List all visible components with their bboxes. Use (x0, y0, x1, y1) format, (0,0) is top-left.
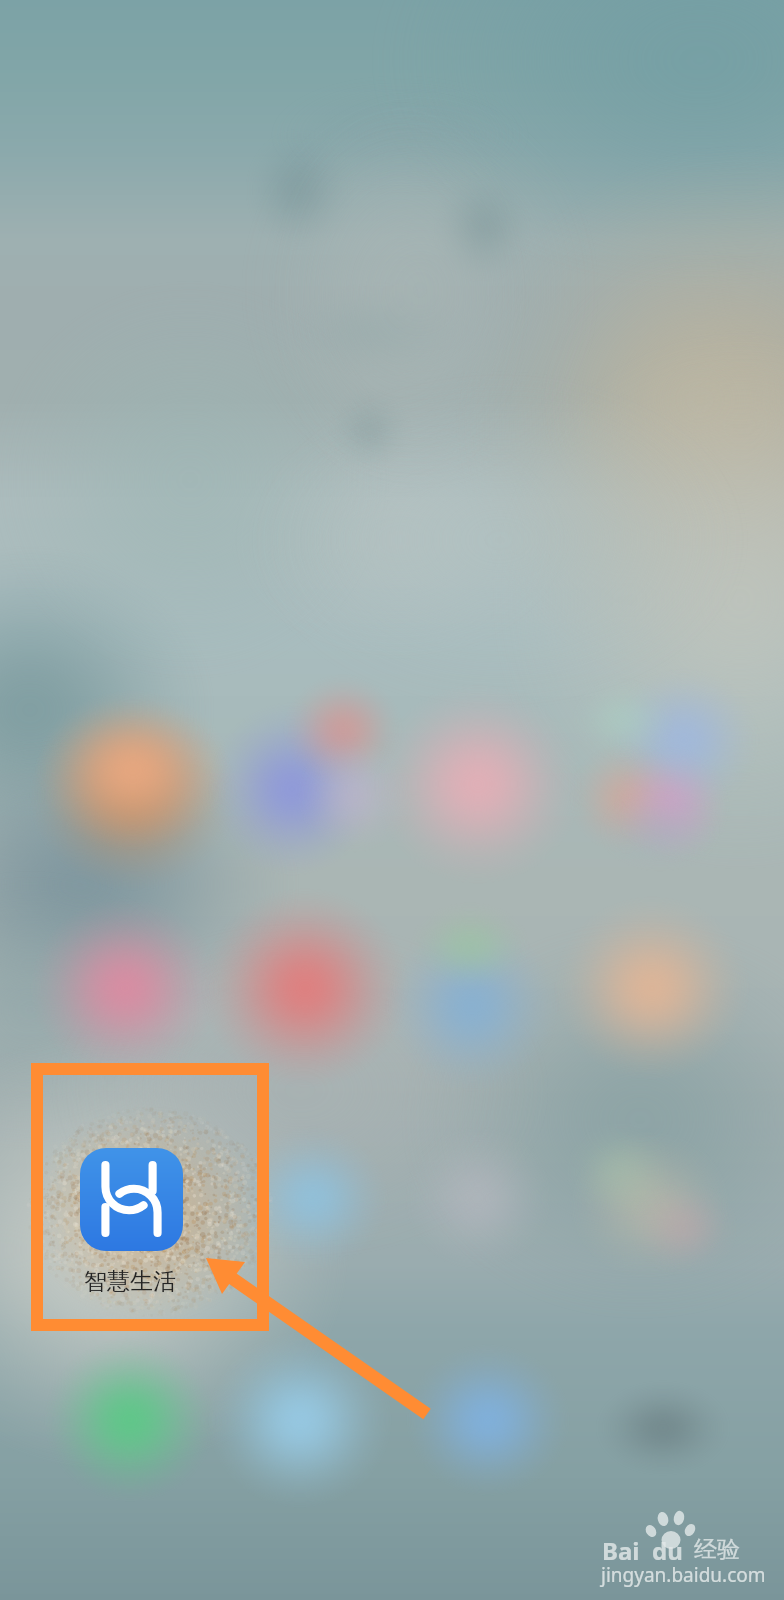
staticText: du (652, 1534, 683, 1567)
staticText: 智慧生活 (84, 1267, 176, 1296)
staticText: jingyan.baidu.com (601, 1562, 766, 1588)
staticText: 经验 (694, 1535, 740, 1564)
staticText: Bai (602, 1534, 640, 1567)
